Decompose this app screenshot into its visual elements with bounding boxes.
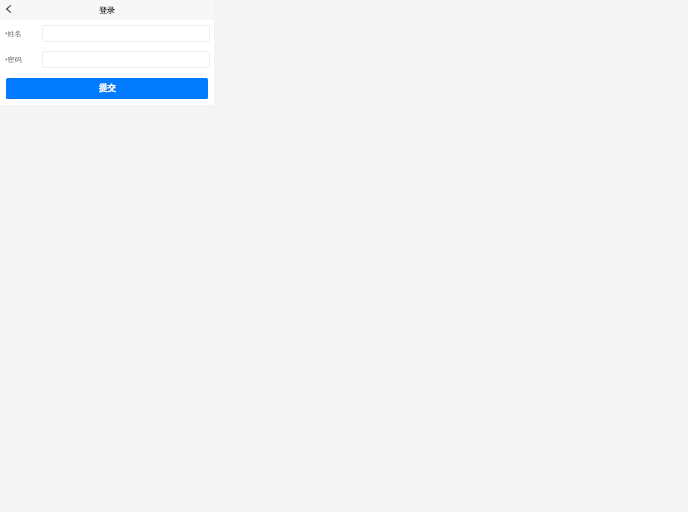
button[interactable]: 请输入密码 — [42, 51, 210, 68]
button[interactable]: 提交 — [6, 78, 208, 99]
staticText: 登录 — [99, 5, 115, 15]
staticText: 提交 — [99, 83, 116, 94]
staticText: *密码 — [5, 55, 22, 64]
button[interactable]: 请输入姓名 — [42, 25, 210, 42]
staticText: *姓名 — [5, 29, 22, 38]
button[interactable]: Back — [0, 0, 16, 20]
